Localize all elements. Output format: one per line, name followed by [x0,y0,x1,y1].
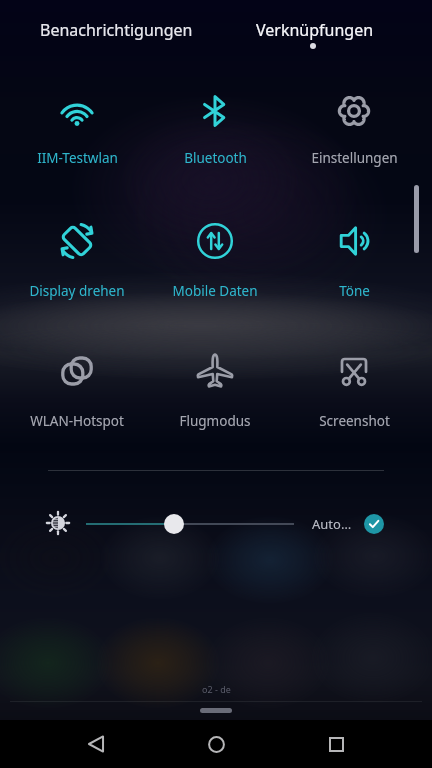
button[interactable]: Brightness slider [86,512,294,536]
staticText: WLAN-Hotspot [30,412,124,430]
staticText: Töne [339,282,370,300]
button[interactable]: Back [72,720,120,768]
staticText: Einstellungen [311,149,398,167]
button[interactable]: Display drehen [13,211,141,289]
button[interactable]: Benachrichtigungen [8,1,224,59]
staticText: Flugmodus [179,412,251,430]
staticText: Verknüpfungen [256,19,374,41]
staticText: Display drehen [29,282,125,300]
button[interactable]: Brightness [43,508,73,538]
button[interactable]: Auto brightness on [364,514,384,534]
staticText: Mobile Daten [172,282,258,300]
button[interactable]: Flugmodus [151,341,279,419]
staticText: IIM-Testwlan [37,149,118,167]
button[interactable]: Mobile Daten [151,211,279,289]
button[interactable]: Bluetooth [151,81,279,159]
button[interactable]: Recents [312,720,360,768]
button[interactable]: Einstellungen [290,81,418,159]
button[interactable]: Auto… [312,512,352,536]
button[interactable]: Töne [290,211,418,289]
button[interactable]: Verknüpfungen [207,1,423,59]
staticText: Bluetooth [184,149,247,167]
button[interactable]: Home [192,720,240,768]
button[interactable]: IIM-Testwlan [13,81,141,159]
staticText: Auto… [312,515,352,533]
staticText: Benachrichtigungen [40,19,193,41]
button[interactable]: WLAN-Hotspot [13,341,141,419]
staticText: o2 - de [202,683,231,695]
button[interactable]: Screenshot [290,341,418,419]
staticText: Screenshot [319,412,390,430]
